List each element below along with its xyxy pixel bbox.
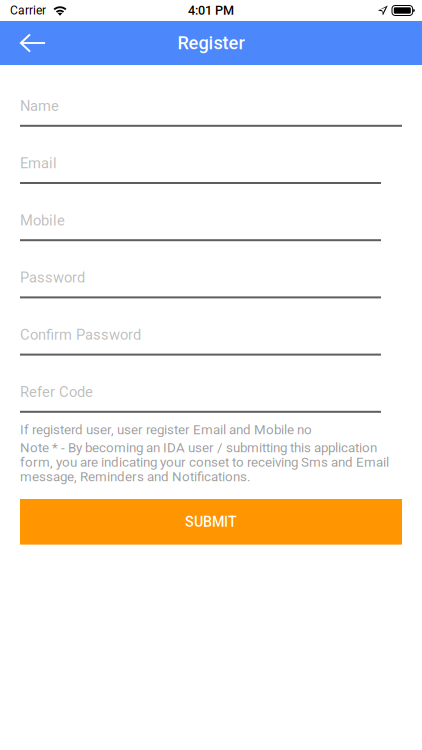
staticText: Register bbox=[177, 32, 244, 54]
staticText: message, Reminders and Notifications. bbox=[20, 469, 251, 484]
button[interactable]: Name bbox=[20, 99, 402, 127]
staticText: Carrier bbox=[10, 3, 46, 18]
staticText: 4:01 PM bbox=[188, 3, 234, 18]
staticText: Confirm Password bbox=[20, 326, 141, 343]
button[interactable]: Back bbox=[0, 21, 59, 65]
button[interactable]: Email bbox=[20, 157, 402, 184]
button[interactable]: SUBMIT bbox=[20, 499, 402, 545]
staticText: Name bbox=[20, 97, 59, 115]
staticText: If registerd user, user register Email a… bbox=[20, 422, 312, 437]
staticText: Note * - By becoming an IDA user / submi… bbox=[20, 440, 377, 455]
button[interactable]: Mobile bbox=[20, 214, 402, 241]
staticText: Email bbox=[20, 155, 57, 172]
staticText: Password bbox=[20, 269, 85, 286]
staticText: Refer Code bbox=[20, 383, 93, 401]
staticText: Mobile bbox=[20, 212, 65, 229]
button[interactable]: Refer Code bbox=[20, 385, 402, 413]
staticText: form, you are indicating your conset to … bbox=[20, 454, 389, 470]
staticText: SUBMIT bbox=[185, 513, 237, 530]
button[interactable]: Password bbox=[20, 271, 402, 298]
button[interactable]: Confirm Password bbox=[20, 328, 402, 356]
